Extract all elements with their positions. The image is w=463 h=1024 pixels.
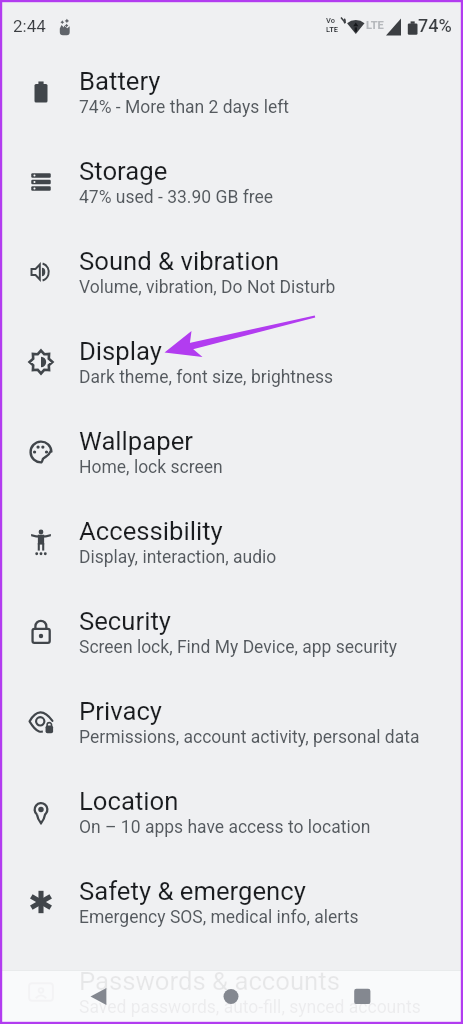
staticText: Storage [79, 156, 168, 186]
staticText: Screen lock, Find My Device, app securit… [79, 637, 398, 658]
staticText: Location [79, 786, 179, 816]
button[interactable]: Display [0, 317, 463, 407]
staticText: Accessibility [79, 516, 223, 546]
staticText: LTE [366, 19, 384, 32]
staticText: Home, lock screen [79, 457, 223, 478]
button[interactable]: Storage [0, 137, 463, 227]
staticText: 2:44 [13, 16, 46, 36]
button[interactable]: Accessibility [0, 497, 463, 587]
staticText: Passwords & accounts [79, 966, 340, 996]
staticText: Safety & emergency [79, 876, 306, 906]
staticText: 47% used - 33.90 GB free [79, 187, 274, 208]
staticText: Display [79, 336, 162, 366]
staticText: Display, interaction, audio [79, 547, 277, 568]
staticText: Vo [326, 16, 335, 25]
button[interactable]: Location [0, 767, 463, 857]
button[interactable]: Wallpaper [0, 407, 463, 497]
staticText: 74% [418, 15, 452, 36]
staticText: Volume, vibration, Do Not Disturb [79, 277, 336, 298]
staticText: Wallpaper [79, 426, 193, 456]
button[interactable]: Battery [0, 47, 463, 137]
staticText: Sound & vibration [79, 246, 280, 276]
staticText: Saved passwords, auto-fill, synced accou… [79, 997, 421, 1018]
button[interactable]: Security [0, 587, 463, 677]
staticText: Emergency SOS, medical info, alerts [79, 907, 359, 928]
staticText: Security [79, 606, 171, 636]
staticText: Battery [79, 66, 161, 96]
staticText: Permissions, account activity, personal … [79, 727, 420, 748]
button[interactable]: Safety & emergency [0, 857, 463, 947]
button[interactable]: Privacy [0, 677, 463, 767]
staticText: 74% - More than 2 days left [79, 97, 289, 118]
staticText: Privacy [79, 696, 162, 726]
button[interactable]: Passwords & accounts [0, 947, 463, 1024]
staticText: Dark theme, font size, brightness [79, 367, 334, 388]
button[interactable]: Sound & vibration [0, 227, 463, 317]
staticText: LTE [326, 25, 339, 34]
staticText: On – 10 apps have access to location [79, 817, 371, 838]
